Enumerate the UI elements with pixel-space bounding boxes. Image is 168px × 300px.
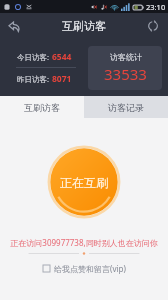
- staticText: 给我点赞和留言(vip): [54, 263, 126, 274]
- button[interactable]: Refresh: [141, 14, 165, 38]
- button[interactable]: Back: [2, 14, 26, 38]
- button[interactable]: 正在互刷: [47, 145, 121, 219]
- button[interactable]: 访客统计: [88, 46, 162, 90]
- staticText: 正在访问309977738,同时别人也在访问你: [10, 237, 158, 248]
- staticText: 访客记录: [108, 102, 144, 113]
- staticText: 昨日访客:: [17, 74, 50, 84]
- staticText: 互刷访客: [62, 19, 106, 33]
- button[interactable]: 给我点赞和留言(vip): [37, 261, 132, 276]
- staticText: 访客统计: [110, 52, 142, 62]
- staticText: 正在互刷: [60, 175, 108, 190]
- button[interactable]: 访客记录: [84, 96, 168, 118]
- staticText: 互刷访客: [24, 102, 60, 113]
- staticText: 8071: [52, 73, 72, 85]
- staticText: 今日访客:: [17, 52, 50, 62]
- staticText: 23:10: [146, 2, 166, 12]
- staticText: 33533: [104, 64, 147, 84]
- staticText: 6544: [52, 51, 72, 63]
- button[interactable]: 互刷访客: [0, 96, 84, 118]
